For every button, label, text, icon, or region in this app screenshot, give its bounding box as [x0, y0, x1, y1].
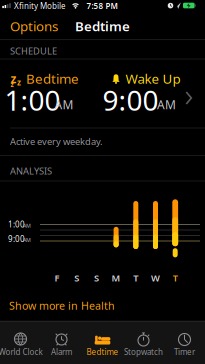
staticText: AM — [23, 222, 31, 229]
staticText: Active every weekday. — [10, 135, 103, 148]
staticText: 1:00 — [4, 81, 60, 119]
staticText: AM — [54, 96, 73, 112]
staticText: M — [112, 272, 121, 284]
button[interactable]: Bedtime — [82, 324, 123, 362]
button[interactable]: Alarm — [41, 324, 82, 362]
staticText: z — [10, 70, 16, 86]
button[interactable]: World Clock — [0, 324, 41, 362]
staticText: 7:58 PM — [86, 0, 117, 11]
staticText: z — [10, 80, 13, 89]
staticText: Options — [10, 17, 58, 35]
staticText: 1:00 — [8, 219, 25, 230]
staticText: Bedtime — [75, 17, 130, 35]
staticText: Bedtime — [26, 70, 79, 87]
staticText: AM — [157, 96, 176, 112]
staticText: Wake Up — [125, 70, 180, 87]
staticText: Stopwatch — [124, 347, 163, 357]
staticText: z — [17, 77, 21, 88]
staticText: World Clock — [0, 347, 42, 357]
staticText: Show more in Health — [9, 298, 115, 313]
button[interactable]: Options — [10, 17, 70, 35]
staticText: Alarm — [51, 347, 72, 357]
staticText: SCHEDULE — [10, 45, 57, 57]
staticText: W — [151, 272, 160, 284]
staticText: S — [94, 272, 99, 284]
staticText: Xfinity Mobile — [14, 0, 66, 11]
staticText: 9:00 — [102, 81, 158, 119]
button[interactable]: Stopwatch — [123, 324, 164, 362]
staticText: T — [173, 272, 178, 284]
staticText: Bedtime — [86, 347, 118, 357]
staticText: F — [54, 272, 59, 284]
staticText: T — [133, 272, 138, 284]
staticText: ANALYSIS — [10, 165, 52, 177]
button[interactable]: Timer — [164, 324, 205, 362]
staticText: S — [74, 272, 79, 284]
staticText: 9:00 — [8, 233, 25, 244]
staticText: AM — [23, 236, 31, 243]
button[interactable]: z — [0, 60, 205, 128]
staticText: Timer — [174, 347, 195, 357]
button[interactable]: Show more in Health — [9, 298, 129, 313]
